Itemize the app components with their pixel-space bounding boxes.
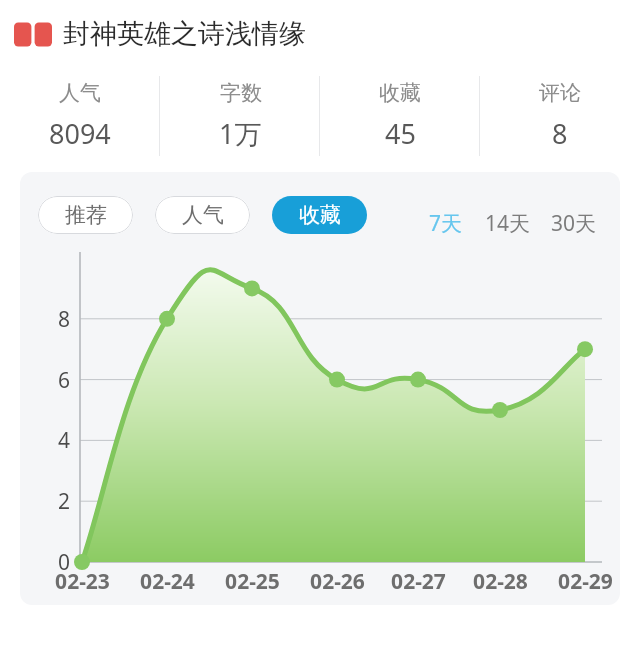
staticText: 字数 xyxy=(220,80,262,106)
staticText: 7天 xyxy=(429,209,463,238)
staticText: 人气 xyxy=(59,80,101,106)
staticText: 8 xyxy=(57,305,70,334)
staticText: 8094 xyxy=(49,115,111,152)
button[interactable]: 14天 xyxy=(482,204,534,243)
staticText: 8 xyxy=(552,115,568,152)
staticText: 推荐 xyxy=(65,202,107,228)
staticText: 14天 xyxy=(485,209,531,238)
button[interactable]: 30天 xyxy=(548,204,600,243)
staticText: 2 xyxy=(57,487,70,516)
staticText: 02-24 xyxy=(140,567,195,596)
staticText: 30天 xyxy=(551,209,597,238)
other: Book xyxy=(14,21,52,48)
staticText: 人气 xyxy=(182,202,224,228)
staticText: 4 xyxy=(57,426,70,455)
button[interactable]: 7天 xyxy=(426,204,466,243)
staticText: 0 xyxy=(57,548,70,577)
staticText: 封神英雄之诗浅情缘 xyxy=(63,17,306,51)
button[interactable]: 收藏 xyxy=(272,196,367,234)
staticText: 02-29 xyxy=(558,567,613,596)
button[interactable]: 推荐 xyxy=(38,196,133,234)
staticText: 评论 xyxy=(539,80,581,106)
button[interactable]: 人气 xyxy=(0,70,160,162)
button[interactable]: 评论 xyxy=(480,70,640,162)
staticText: 收藏 xyxy=(379,80,421,106)
staticText: 02-25 xyxy=(225,567,280,596)
staticText: 02-28 xyxy=(473,567,528,596)
staticText: 45 xyxy=(385,115,416,152)
button[interactable]: 收藏 xyxy=(320,70,480,162)
staticText: 02-26 xyxy=(310,567,365,596)
staticText: 6 xyxy=(57,366,70,395)
staticText: 1万 xyxy=(219,115,262,152)
staticText: 02-27 xyxy=(391,567,446,596)
staticText: 收藏 xyxy=(299,202,341,228)
staticText: 02-23 xyxy=(55,567,110,596)
button[interactable]: Book xyxy=(14,17,306,51)
button[interactable]: 人气 xyxy=(155,196,250,234)
button[interactable]: 字数 xyxy=(160,70,320,162)
